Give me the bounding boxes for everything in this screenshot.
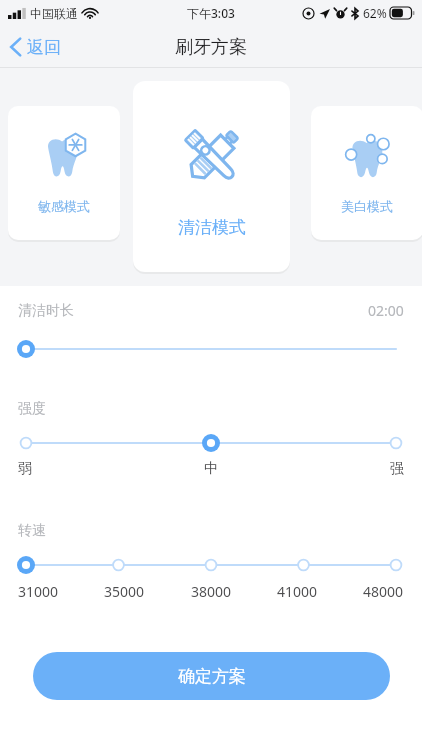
- button[interactable]: 清洁模式: [133, 81, 290, 272]
- staticText: 强: [390, 460, 404, 478]
- staticText: 41000: [277, 582, 318, 601]
- staticText: 中: [204, 460, 218, 478]
- button[interactable]: [18, 554, 404, 576]
- button[interactable]: 返回: [0, 26, 73, 68]
- button[interactable]: [18, 338, 404, 360]
- staticText: 35000: [104, 582, 145, 601]
- staticText: 美白模式: [341, 198, 393, 214]
- button[interactable]: 敏感模式: [8, 106, 120, 240]
- staticText: 清洁时长: [18, 302, 74, 320]
- staticText: 转速: [18, 522, 46, 540]
- staticText: 返回: [27, 37, 61, 58]
- staticText: 62%: [363, 5, 387, 21]
- button[interactable]: 确定方案: [33, 652, 390, 700]
- staticText: 48000: [363, 582, 404, 601]
- staticText: 敏感模式: [38, 198, 90, 214]
- staticText: 刷牙方案: [175, 36, 247, 59]
- button[interactable]: 美白模式: [311, 106, 422, 240]
- staticText: 清洁模式: [178, 217, 246, 238]
- staticText: 强度: [18, 400, 46, 418]
- staticText: 下午3:03: [187, 5, 235, 21]
- button[interactable]: [18, 432, 404, 454]
- staticText: 38000: [191, 582, 232, 601]
- staticText: 弱: [18, 460, 32, 478]
- staticText: 确定方案: [178, 666, 246, 687]
- staticText: 02:00: [368, 301, 404, 320]
- staticText: 31000: [18, 582, 59, 601]
- staticText: 中国联通: [30, 6, 78, 21]
